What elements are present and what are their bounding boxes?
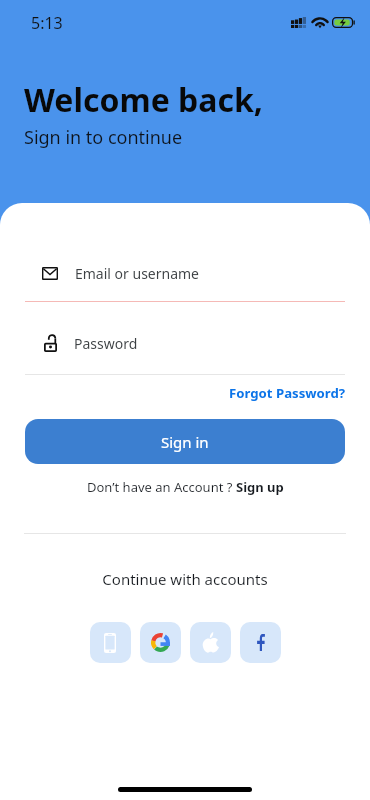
staticText: Sign up bbox=[236, 478, 284, 496]
staticText: Email or username bbox=[75, 264, 200, 283]
button[interactable]: Sign up bbox=[236, 478, 284, 496]
staticText: 5:13 bbox=[31, 12, 63, 34]
button[interactable]: Sign in bbox=[25, 419, 345, 464]
staticText: Sign in bbox=[161, 432, 209, 452]
button[interactable]: Sign in with phone bbox=[90, 622, 131, 663]
staticText: Forgot Password? bbox=[229, 384, 346, 402]
button[interactable]: Forgot Password? bbox=[229, 384, 346, 402]
staticText: Don’t have an Account ? bbox=[87, 478, 236, 496]
staticText: Welcome back, bbox=[24, 78, 263, 122]
button[interactable]: Email or username bbox=[42, 260, 345, 286]
staticText: Continue with accounts bbox=[0, 569, 370, 589]
button[interactable]: Password bbox=[44, 330, 345, 356]
button[interactable]: Sign in with Apple bbox=[190, 622, 231, 663]
button[interactable]: Sign in with Google bbox=[140, 622, 181, 663]
staticText: Sign in to continue bbox=[24, 125, 183, 150]
button[interactable]: Sign in with Facebook bbox=[240, 622, 281, 663]
staticText: Password bbox=[74, 334, 138, 353]
